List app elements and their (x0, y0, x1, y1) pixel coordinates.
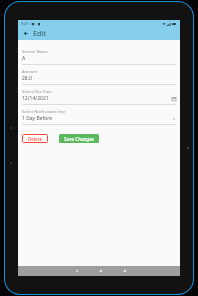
staticText: Delete (28, 136, 42, 142)
button[interactable]: Back (20, 28, 31, 39)
button[interactable]: Amount (18, 65, 180, 85)
staticText: Edit (33, 29, 46, 39)
button[interactable]: Select Notification time (18, 105, 180, 125)
button[interactable]: Service Name (18, 45, 180, 65)
button[interactable]: Select Due Date (18, 85, 180, 105)
staticText: A (22, 55, 176, 62)
staticText: Select Due Date (22, 89, 52, 94)
staticText: Save Changes (64, 136, 94, 142)
staticText: 12/14/2021 (22, 95, 172, 102)
staticText: 9:41 (21, 21, 29, 26)
staticText: 1 Day Before (22, 115, 172, 122)
staticText: Service Name (22, 49, 48, 54)
button[interactable]: Back (72, 266, 82, 276)
staticText: Amount (22, 69, 38, 74)
staticText: 28.0 (22, 75, 176, 82)
button[interactable]: Recent apps (120, 266, 130, 276)
button[interactable]: Delete (22, 134, 48, 143)
button[interactable]: Save Changes (59, 134, 99, 143)
staticText: Select Notification time (22, 109, 66, 114)
button[interactable]: Home (96, 266, 106, 276)
